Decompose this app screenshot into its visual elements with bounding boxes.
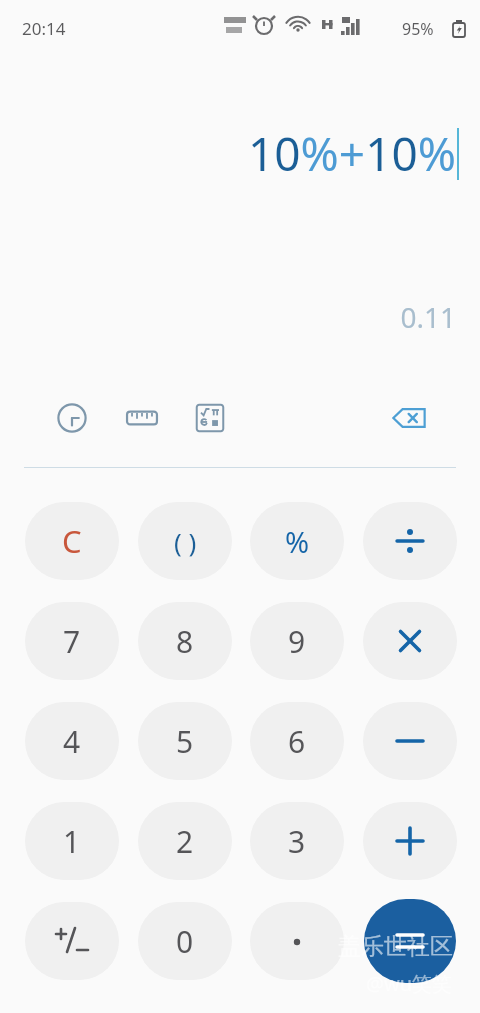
button[interactable]: C bbox=[25, 502, 119, 580]
button[interactable]: % bbox=[250, 502, 344, 580]
staticText: 0 bbox=[176, 921, 194, 962]
button[interactable]: 6 bbox=[250, 702, 344, 780]
staticText: 盖乐世社区 bbox=[338, 932, 453, 961]
button[interactable]: 2 bbox=[138, 802, 232, 880]
button[interactable]: Unit converter bbox=[119, 395, 165, 441]
button[interactable]: Scientific functions bbox=[187, 395, 233, 441]
button[interactable]: 3 bbox=[250, 802, 344, 880]
staticText: 5 bbox=[176, 721, 194, 762]
staticText: 9 bbox=[288, 621, 306, 662]
staticText: 0.11 bbox=[0, 298, 456, 336]
button[interactable]: 4 bbox=[25, 702, 119, 780]
button[interactable]: Decimal point bbox=[250, 902, 344, 980]
staticText: 1 bbox=[63, 821, 81, 862]
button[interactable]: Toggle sign bbox=[25, 902, 119, 980]
staticText: ( ) bbox=[174, 524, 197, 559]
button[interactable]: Backspace bbox=[386, 395, 432, 441]
staticText: C bbox=[62, 520, 82, 562]
button[interactable]: Minus bbox=[363, 702, 457, 780]
staticText: @wu笑笑 bbox=[366, 970, 453, 997]
button[interactable]: History bbox=[49, 395, 95, 441]
button[interactable]: 9 bbox=[250, 602, 344, 680]
staticText: % bbox=[285, 522, 310, 561]
staticText: 3 bbox=[288, 821, 306, 862]
button[interactable]: 1 bbox=[25, 802, 119, 880]
button[interactable]: Divide bbox=[363, 502, 457, 580]
button[interactable]: 5 bbox=[138, 702, 232, 780]
button[interactable]: 0 bbox=[138, 902, 232, 980]
staticText: 4 bbox=[63, 721, 81, 762]
staticText: 7 bbox=[63, 621, 81, 662]
staticText: 20:14 bbox=[22, 17, 66, 40]
button[interactable]: 8 bbox=[138, 602, 232, 680]
staticText: 6 bbox=[288, 721, 306, 762]
staticText: 10%+10% bbox=[0, 122, 456, 185]
button[interactable]: ( ) bbox=[138, 502, 232, 580]
button[interactable]: Plus bbox=[363, 802, 457, 880]
button[interactable]: 7 bbox=[25, 602, 119, 680]
staticText: 95% bbox=[402, 18, 434, 40]
staticText: 2 bbox=[176, 821, 194, 862]
button[interactable]: Equals bbox=[364, 899, 456, 983]
button[interactable]: Multiply bbox=[363, 602, 457, 680]
staticText: 8 bbox=[176, 621, 194, 662]
